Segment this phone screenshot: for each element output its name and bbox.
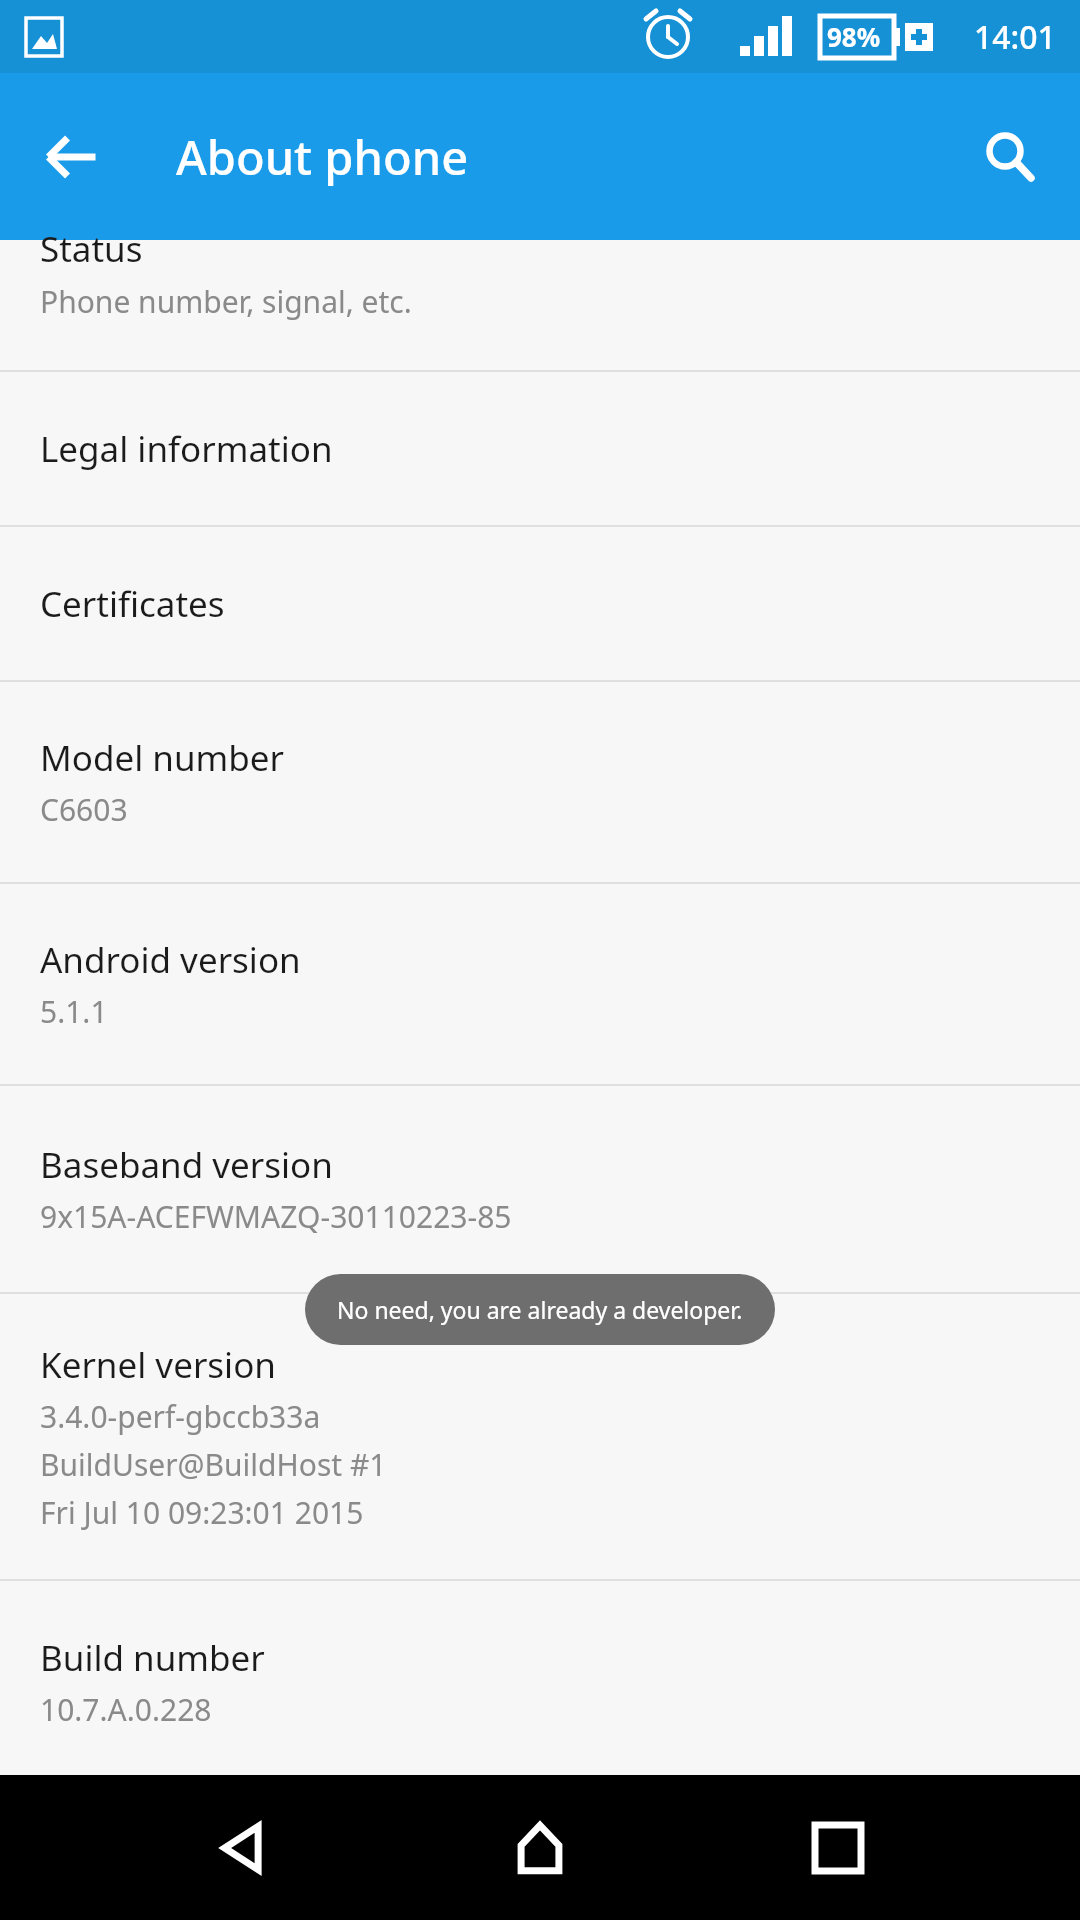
button[interactable]: Back bbox=[188, 1793, 298, 1903]
staticText: C6603 bbox=[40, 789, 128, 830]
staticText: Kernel version bbox=[40, 1341, 276, 1389]
staticText: Baseband version bbox=[40, 1141, 333, 1189]
staticText: Fri Jul 10 09:23:01 2015 bbox=[40, 1492, 364, 1533]
button[interactable]: Status bbox=[0, 240, 1080, 370]
button[interactable]: Back bbox=[32, 117, 112, 197]
staticText: Android version bbox=[40, 936, 301, 984]
staticText: 5.1.1 bbox=[40, 991, 108, 1032]
staticText: Model number bbox=[40, 734, 285, 782]
staticText: 98% bbox=[827, 19, 881, 54]
staticText: Build number bbox=[40, 1634, 265, 1682]
button[interactable]: Search bbox=[970, 117, 1050, 197]
button[interactable]: Recent apps bbox=[783, 1793, 893, 1903]
button[interactable]: Build number bbox=[0, 1581, 1080, 1783]
staticText: BuildUser@BuildHost #1 bbox=[40, 1444, 387, 1485]
staticText: Certificates bbox=[40, 580, 225, 628]
staticText: Phone number, signal, etc. bbox=[40, 281, 412, 322]
button[interactable]: Baseband version bbox=[0, 1086, 1080, 1292]
button[interactable]: Kernel version bbox=[0, 1294, 1080, 1579]
staticText: Status bbox=[40, 225, 143, 273]
staticText: 14:01 bbox=[974, 15, 1056, 59]
staticText: Legal information bbox=[40, 425, 333, 473]
button[interactable]: Certificates bbox=[0, 527, 1080, 680]
button[interactable]: Android version bbox=[0, 884, 1080, 1084]
staticText: 9x15A-ACEFWMAZQ-30110223-85 bbox=[40, 1196, 512, 1237]
button[interactable]: Home bbox=[485, 1793, 595, 1903]
button[interactable]: Legal information bbox=[0, 372, 1080, 525]
staticText: 10.7.A.0.228 bbox=[40, 1689, 212, 1730]
staticText: About phone bbox=[176, 125, 469, 189]
staticText: No need, you are already a developer. bbox=[337, 1294, 743, 1325]
button[interactable]: Model number bbox=[0, 682, 1080, 882]
staticText: 3.4.0-perf-gbccb33a bbox=[40, 1396, 321, 1437]
